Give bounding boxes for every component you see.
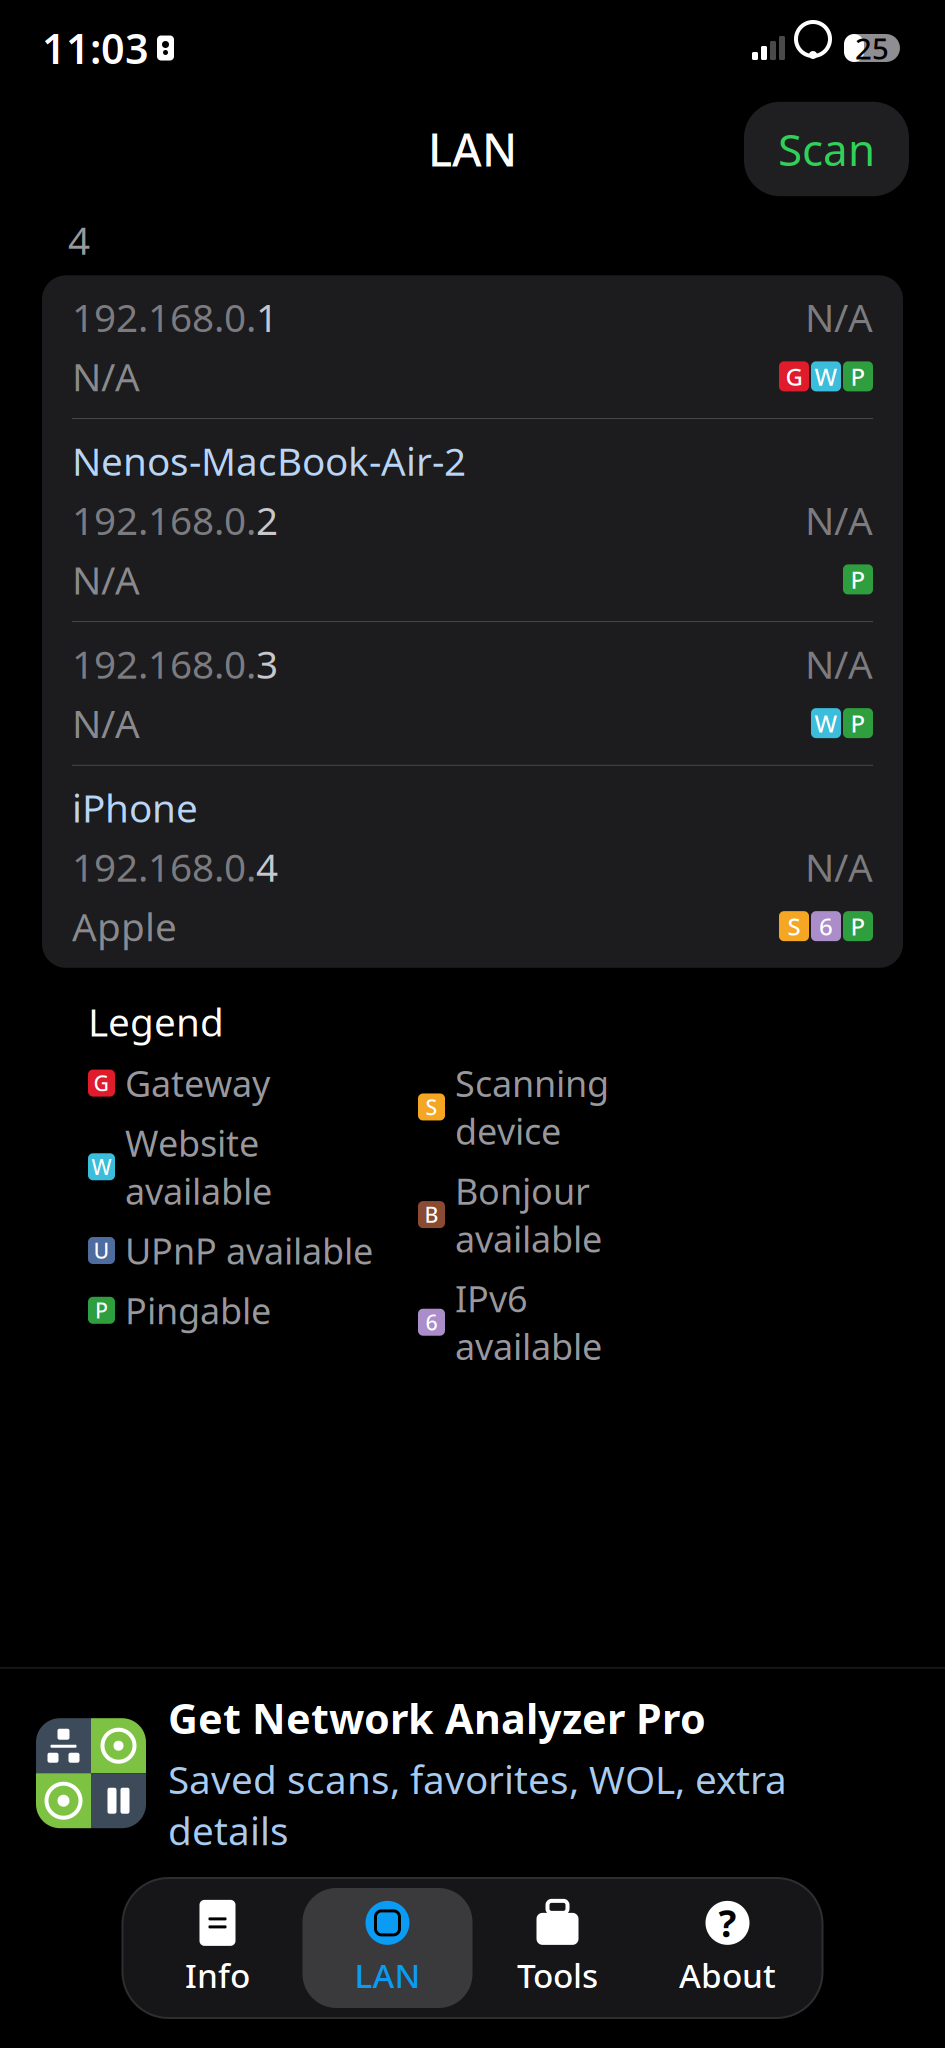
- staticText: 4: [68, 214, 90, 265]
- button[interactable]: Scan: [744, 102, 909, 196]
- staticText: Scan: [778, 120, 875, 178]
- staticText: G: [785, 360, 802, 392]
- staticText: 11:03: [42, 21, 149, 75]
- staticText: UPnP available: [125, 1227, 373, 1274]
- staticText: About: [679, 1953, 776, 1997]
- button[interactable]: LAN: [302, 1888, 472, 2008]
- staticText: 192.168.0.: [72, 638, 256, 689]
- staticText: Get Network Analyzer Pro: [168, 1690, 706, 1745]
- staticText: 4: [256, 841, 278, 892]
- button[interactable]: Tools: [472, 1888, 642, 2008]
- staticText: 192.168.0.: [72, 291, 256, 343]
- button[interactable]: 192.168.0.: [42, 275, 903, 418]
- staticText: N/A: [72, 554, 140, 605]
- staticText: P: [850, 563, 865, 595]
- staticText: Legend: [88, 996, 224, 1047]
- staticText: 192.168.0.: [72, 841, 256, 892]
- staticText: N/A: [805, 638, 873, 689]
- staticText: N/A: [72, 697, 140, 749]
- button[interactable]: Nenos-MacBook-Air-2: [42, 419, 903, 621]
- staticText: Pingable: [125, 1286, 271, 1334]
- staticText: B: [424, 1200, 438, 1229]
- staticText: P: [850, 707, 865, 739]
- staticText: LAN: [428, 119, 517, 179]
- staticText: iPhone: [72, 782, 198, 833]
- staticText: Tools: [517, 1953, 598, 1997]
- staticText: 2: [256, 494, 278, 546]
- staticText: 3: [256, 638, 278, 689]
- staticText: 1: [256, 291, 278, 343]
- staticText: N/A: [805, 494, 873, 546]
- button[interactable]: Info: [132, 1888, 302, 2008]
- staticText: Scanning device: [455, 1059, 609, 1155]
- staticText: N/A: [805, 291, 873, 343]
- staticText: 25: [855, 28, 889, 67]
- staticText: ?: [718, 1898, 736, 1948]
- staticText: Saved scans, favorites, WOL, extra detai…: [168, 1753, 787, 1856]
- staticText: N/A: [72, 351, 140, 402]
- staticText: Info: [185, 1953, 250, 1997]
- button[interactable]: iPhone: [42, 766, 903, 968]
- staticText: S: [787, 910, 800, 942]
- staticText: 192.168.0.: [72, 494, 256, 546]
- button[interactable]: Get Network Analyzer Pro: [0, 1668, 945, 1878]
- staticText: W: [814, 360, 837, 392]
- staticText: G: [93, 1069, 109, 1097]
- staticText: 6: [819, 910, 833, 942]
- staticText: Apple: [72, 900, 177, 952]
- staticText: IPv6 available: [455, 1274, 602, 1370]
- staticText: Gateway: [125, 1059, 270, 1107]
- staticText: Website available: [125, 1119, 272, 1215]
- staticText: P: [850, 910, 865, 942]
- staticText: W: [814, 707, 837, 739]
- staticText: Nenos-MacBook-Air-2: [72, 435, 466, 486]
- staticText: 6: [425, 1308, 437, 1336]
- staticText: S: [425, 1093, 437, 1121]
- staticText: U: [93, 1236, 109, 1265]
- staticText: P: [95, 1296, 108, 1324]
- staticText: P: [850, 360, 865, 392]
- staticText: Bonjour available: [455, 1167, 602, 1262]
- staticText: N/A: [805, 841, 873, 892]
- button[interactable]: 192.168.0.: [42, 622, 903, 765]
- staticText: LAN: [354, 1953, 420, 1997]
- staticText: W: [91, 1153, 111, 1181]
- button[interactable]: ?: [642, 1888, 812, 2008]
